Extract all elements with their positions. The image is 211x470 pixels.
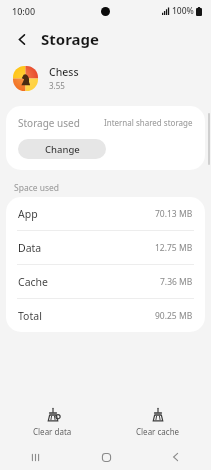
staticText: Cache (18, 275, 48, 289)
staticText: Internal shared storage (104, 117, 193, 128)
staticText: Space used (14, 182, 60, 194)
staticText: Clear cache (136, 426, 180, 437)
button[interactable]: Back (141, 444, 211, 470)
button[interactable]: App (6, 197, 205, 230)
staticText: Storage (41, 29, 99, 49)
staticText: 3.55 (49, 80, 65, 91)
button[interactable]: Cache (6, 265, 205, 298)
button[interactable]: Storage used (6, 106, 205, 139)
button[interactable]: Back (12, 29, 32, 49)
staticText: Clear data (33, 426, 72, 437)
staticText: Change (45, 143, 80, 156)
staticText: 70.13 MB (155, 208, 193, 220)
staticText: 100% (172, 5, 194, 17)
button[interactable]: Data (6, 231, 205, 264)
staticText: Storage used (18, 116, 80, 130)
staticText: 90.25 MB (155, 310, 193, 322)
staticText: Total (18, 309, 42, 323)
staticText: App (18, 207, 38, 221)
button[interactable]: Clear cache (105, 408, 211, 437)
button[interactable]: Recents (0, 444, 71, 470)
staticText: Data (18, 241, 42, 255)
button[interactable]: Change (18, 139, 106, 159)
staticText: 7.36 MB (160, 276, 193, 288)
staticText: 10:00 (12, 5, 36, 17)
button[interactable]: Home (71, 444, 141, 470)
staticText: Chess (49, 65, 79, 79)
button[interactable]: Clear data (0, 408, 105, 437)
staticText: 12.75 MB (155, 242, 193, 254)
button[interactable]: Total (6, 299, 205, 332)
